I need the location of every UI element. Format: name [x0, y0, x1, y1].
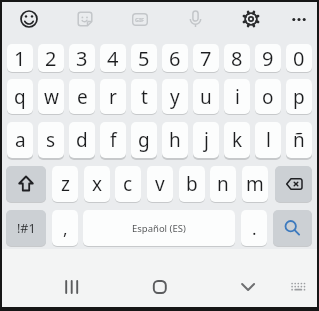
staticText: a: [15, 127, 26, 153]
staticText: u: [200, 84, 212, 110]
button[interactable]: l: [255, 122, 281, 158]
button[interactable]: f: [100, 122, 126, 158]
staticText: ,: [63, 217, 68, 240]
button[interactable]: x: [84, 166, 110, 202]
button[interactable]: [275, 166, 312, 202]
button[interactable]: b: [179, 166, 205, 202]
button[interactable]: v: [147, 166, 173, 202]
button[interactable]: t: [131, 79, 157, 114]
button[interactable]: p: [286, 79, 312, 114]
button[interactable]: [229, 269, 267, 305]
button[interactable]: y: [162, 79, 188, 114]
button[interactable]: q: [7, 79, 33, 114]
button[interactable]: e: [69, 79, 95, 114]
button[interactable]: [273, 210, 312, 246]
button[interactable]: 8: [224, 44, 250, 72]
button[interactable]: !#1: [6, 210, 46, 246]
button[interactable]: h: [162, 122, 188, 158]
button[interactable]: 2: [38, 44, 64, 72]
button[interactable]: [6, 166, 46, 202]
staticText: 5: [138, 45, 150, 72]
button[interactable]: [180, 4, 210, 34]
staticText: g: [138, 127, 150, 153]
staticText: q: [14, 84, 26, 110]
button[interactable]: i: [224, 79, 250, 114]
button[interactable]: 1: [7, 44, 33, 72]
staticText: z: [61, 171, 70, 197]
staticText: t: [141, 84, 148, 110]
staticText: i: [235, 84, 240, 110]
button[interactable]: 0: [286, 44, 312, 72]
button[interactable]: Español (ES): [83, 210, 235, 246]
button[interactable]: m: [242, 166, 268, 202]
button[interactable]: z: [52, 166, 78, 202]
staticText: w: [44, 84, 59, 110]
button[interactable]: ñ: [286, 122, 312, 158]
button[interactable]: [52, 269, 90, 305]
button[interactable]: a: [7, 122, 33, 158]
staticText: n: [217, 171, 229, 197]
staticText: e: [77, 84, 88, 110]
button[interactable]: n: [210, 166, 236, 202]
button[interactable]: 3: [69, 44, 95, 72]
staticText: 1: [14, 45, 26, 72]
staticText: .: [252, 217, 257, 240]
staticText: 4: [107, 45, 119, 72]
button[interactable]: g: [131, 122, 157, 158]
staticText: 9: [262, 45, 274, 72]
staticText: 3: [76, 45, 88, 72]
button[interactable]: c: [115, 166, 141, 202]
staticText: !#1: [17, 220, 36, 237]
button[interactable]: u: [193, 79, 219, 114]
staticText: 7: [200, 45, 212, 72]
staticText: k: [232, 127, 243, 153]
staticText: b: [186, 171, 198, 197]
staticText: s: [46, 127, 56, 153]
button[interactable]: [284, 4, 314, 34]
staticText: c: [123, 171, 133, 197]
staticText: 6: [169, 45, 181, 72]
staticText: 2: [45, 45, 57, 72]
staticText: ñ: [293, 127, 305, 153]
staticText: f: [110, 127, 117, 153]
button[interactable]: [141, 269, 179, 305]
staticText: v: [155, 171, 165, 197]
button[interactable]: [283, 271, 315, 303]
button[interactable]: k: [224, 122, 250, 158]
button[interactable]: ,: [52, 210, 78, 246]
staticText: d: [76, 127, 88, 153]
staticText: h: [169, 127, 181, 153]
staticText: GIF: [135, 16, 145, 23]
staticText: o: [262, 84, 274, 110]
button[interactable]: .: [241, 210, 267, 246]
staticText: 8: [231, 45, 243, 72]
button[interactable]: 4: [100, 44, 126, 72]
button[interactable]: [15, 4, 45, 34]
button[interactable]: GIF: [132, 13, 148, 26]
button[interactable]: d: [69, 122, 95, 158]
button[interactable]: [236, 4, 266, 34]
button[interactable]: w: [38, 79, 64, 114]
button[interactable]: 9: [255, 44, 281, 72]
staticText: m: [246, 171, 264, 197]
button[interactable]: [70, 4, 100, 34]
staticText: Español (ES): [132, 222, 186, 235]
staticText: p: [293, 84, 305, 110]
staticText: 0: [293, 45, 305, 72]
staticText: l: [266, 127, 271, 153]
button[interactable]: r: [100, 79, 126, 114]
staticText: r: [109, 84, 117, 110]
staticText: y: [170, 84, 180, 110]
staticText: j: [204, 127, 209, 153]
staticText: x: [92, 171, 103, 197]
button[interactable]: 5: [131, 44, 157, 72]
button[interactable]: 6: [162, 44, 188, 72]
button[interactable]: s: [38, 122, 64, 158]
button[interactable]: j: [193, 122, 219, 158]
button[interactable]: o: [255, 79, 281, 114]
button[interactable]: 7: [193, 44, 219, 72]
